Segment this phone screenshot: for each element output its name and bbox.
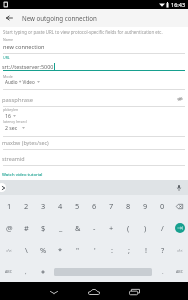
button[interactable]: $ bbox=[35, 217, 52, 239]
staticText: $ bbox=[41, 223, 46, 233]
staticText: * bbox=[58, 245, 63, 255]
staticText: new connection bbox=[3, 43, 45, 51]
button[interactable]: =\< bbox=[0, 239, 18, 261]
button[interactable]: Navigate up bbox=[0, 9, 19, 27]
button[interactable]: Back bbox=[34, 282, 74, 300]
button[interactable]: 0 bbox=[154, 195, 171, 217]
staticText: , bbox=[25, 268, 27, 276]
button[interactable]: ! bbox=[137, 239, 154, 261]
staticText: URL bbox=[3, 55, 10, 60]
button[interactable]: ' bbox=[86, 239, 103, 261]
staticText: 7 bbox=[109, 201, 114, 211]
staticText: 3 bbox=[41, 201, 46, 211]
staticText: pbkeylen bbox=[3, 107, 19, 112]
staticText: : bbox=[111, 245, 113, 255]
staticText: & bbox=[75, 223, 81, 233]
button[interactable]: Enter bbox=[171, 217, 188, 239]
button[interactable]: * bbox=[52, 239, 69, 261]
button[interactable]: More symbols bbox=[171, 239, 188, 261]
staticText: / bbox=[161, 223, 164, 233]
staticText: =\< bbox=[177, 248, 183, 253]
button[interactable]: Watch video tutorial bbox=[2, 172, 43, 178]
button[interactable]: ; bbox=[120, 239, 137, 261]
staticText: ; bbox=[128, 245, 130, 255]
staticText: 5 bbox=[75, 201, 80, 211]
staticText: streamid bbox=[2, 155, 25, 162]
button[interactable]: / bbox=[154, 217, 171, 239]
button[interactable]: : bbox=[103, 239, 120, 261]
staticText: passphrase bbox=[2, 96, 34, 104]
staticText: 0 bbox=[160, 201, 165, 211]
button[interactable]: 8 bbox=[120, 195, 137, 217]
staticText: 6 bbox=[92, 201, 97, 211]
button[interactable]: Voice input bbox=[174, 183, 184, 193]
staticText: latency (msec) bbox=[3, 119, 27, 124]
staticText: " bbox=[76, 245, 80, 255]
button[interactable]: # bbox=[18, 217, 35, 239]
staticText: Mode bbox=[3, 74, 13, 79]
staticText: srt://testserver:5000 bbox=[2, 63, 54, 70]
staticText: 16:43 bbox=[171, 1, 186, 8]
staticText: =\< bbox=[6, 248, 12, 253]
staticText: New outgoing connection bbox=[22, 14, 97, 22]
staticText: ABC bbox=[5, 269, 12, 274]
staticText: @ bbox=[6, 223, 13, 233]
staticText: ABC bbox=[176, 269, 183, 274]
button[interactable]: 7 bbox=[103, 195, 120, 217]
staticText: ! bbox=[145, 245, 147, 255]
staticText: 8 bbox=[126, 201, 131, 211]
staticText: # bbox=[24, 223, 29, 233]
button[interactable]: + bbox=[103, 217, 120, 239]
button[interactable]: Home bbox=[74, 282, 114, 300]
staticText: Audio + Video bbox=[5, 79, 35, 85]
button[interactable]: 5 bbox=[69, 195, 86, 217]
staticText: . bbox=[162, 268, 164, 276]
button[interactable]: _ bbox=[52, 217, 69, 239]
staticText: maxbw (bytes/sec) bbox=[2, 139, 49, 146]
staticText: + bbox=[109, 223, 114, 233]
staticText: 4 bbox=[58, 201, 63, 211]
button[interactable]: ( bbox=[120, 217, 137, 239]
staticText: ( bbox=[127, 223, 130, 233]
button[interactable]: - bbox=[86, 217, 103, 239]
button[interactable]: ) bbox=[137, 217, 154, 239]
staticText: Name bbox=[3, 37, 14, 42]
staticText: 9 bbox=[143, 201, 148, 211]
button[interactable]: 3 bbox=[35, 195, 52, 217]
button[interactable]: , bbox=[17, 261, 34, 282]
staticText: ' bbox=[94, 245, 96, 255]
staticText: ? bbox=[161, 245, 165, 255]
staticText: Watch video tutorial bbox=[2, 172, 43, 178]
staticText: Start typing or paste URL to view protoc… bbox=[3, 29, 163, 35]
button[interactable]: & bbox=[69, 217, 86, 239]
staticText: 16 bbox=[5, 112, 11, 119]
button[interactable]: 1 bbox=[0, 195, 18, 217]
staticText: 1 bbox=[7, 201, 12, 211]
button[interactable]: Recent apps bbox=[114, 282, 154, 300]
button[interactable]: ? bbox=[154, 239, 171, 261]
button[interactable]: 6 bbox=[86, 195, 103, 217]
button[interactable]: Show passphrase bbox=[176, 95, 184, 103]
button[interactable]: 9 bbox=[137, 195, 154, 217]
staticText: \ bbox=[25, 245, 28, 255]
button[interactable]: Space bbox=[51, 261, 154, 282]
button[interactable]: 2 bbox=[18, 195, 35, 217]
button[interactable]: \ bbox=[18, 239, 35, 261]
staticText: % bbox=[40, 245, 47, 255]
button[interactable]: " bbox=[69, 239, 86, 261]
button[interactable]: 4 bbox=[52, 195, 69, 217]
button[interactable]: % bbox=[35, 239, 52, 261]
button[interactable]: @ bbox=[0, 217, 18, 239]
button[interactable]: Backspace bbox=[171, 195, 188, 217]
staticText: ) bbox=[144, 223, 147, 233]
button[interactable]: Expand toolbar bbox=[0, 183, 6, 192]
staticText: 2 sec bbox=[5, 124, 18, 131]
staticText: - bbox=[93, 223, 96, 233]
staticText: _ bbox=[59, 223, 63, 233]
button[interactable]: Keyboard settings bbox=[34, 261, 51, 282]
button[interactable]: ABC bbox=[0, 261, 17, 282]
staticText: 2 bbox=[24, 201, 29, 211]
button[interactable]: ABC bbox=[171, 261, 188, 282]
